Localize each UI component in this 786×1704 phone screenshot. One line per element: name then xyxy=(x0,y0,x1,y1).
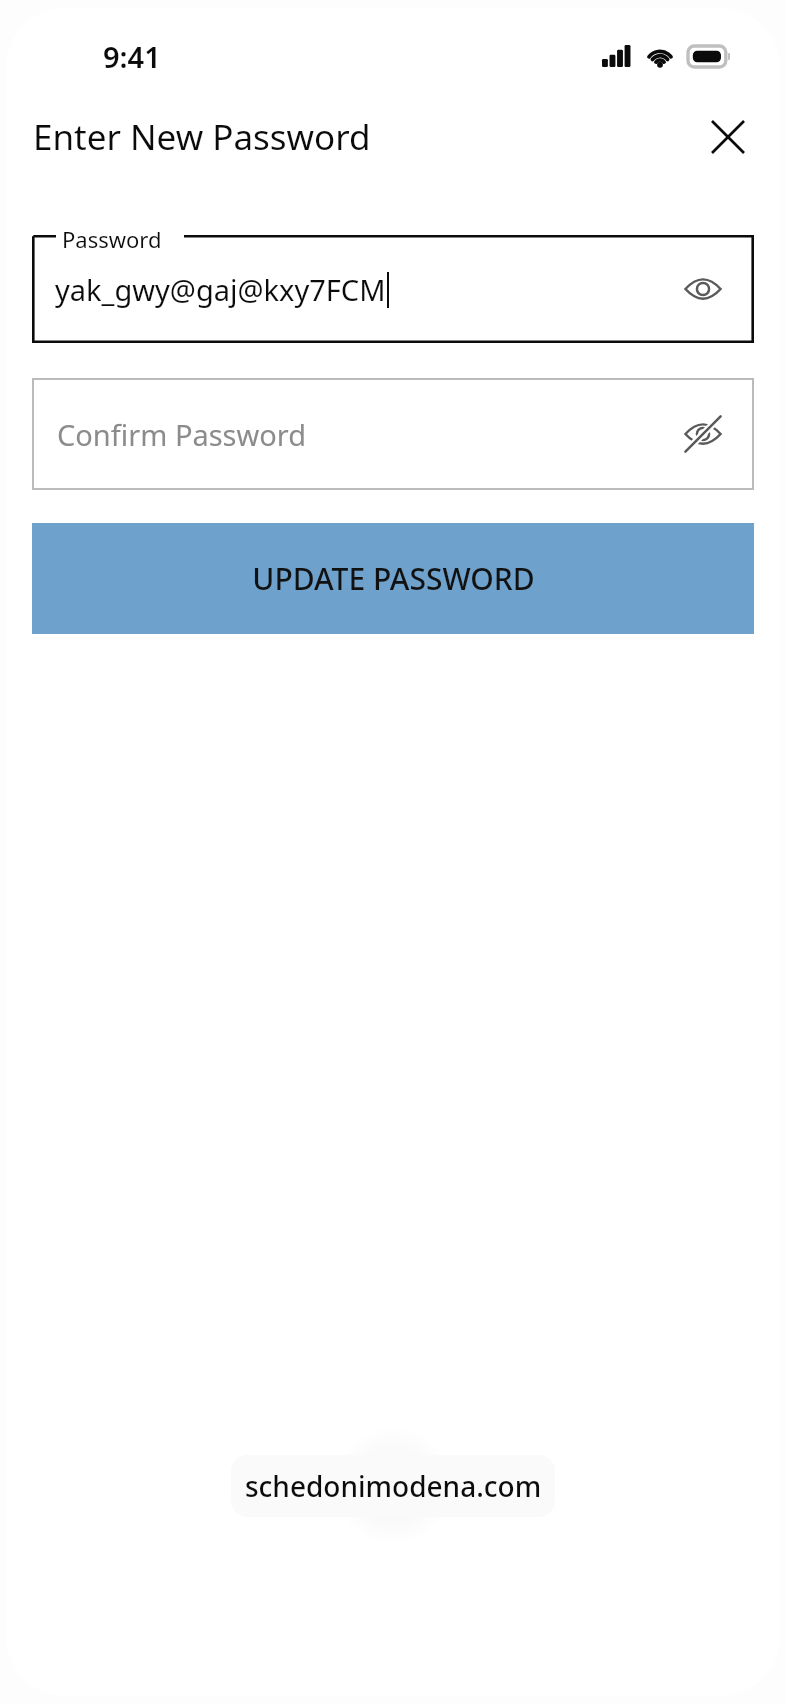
staticText: schedonimodena.com xyxy=(245,1467,542,1505)
button[interactable]: schedonimodena.com xyxy=(231,1455,555,1517)
button[interactable]: Hide password xyxy=(672,258,734,320)
button[interactable]: Confirm Password xyxy=(32,378,754,490)
staticText: Confirm Password xyxy=(57,415,672,454)
staticText: yak_gwy@gaj@kxy7FCM xyxy=(55,270,386,309)
staticText: Enter New Password xyxy=(33,113,371,161)
button[interactable]: Close xyxy=(700,109,756,165)
staticText: Password xyxy=(62,224,162,254)
button[interactable]: UPDATE PASSWORD xyxy=(32,523,754,634)
staticText: UPDATE PASSWORD xyxy=(252,558,535,599)
button[interactable]: Show password xyxy=(672,403,734,465)
staticText: 9:41 xyxy=(103,37,161,76)
